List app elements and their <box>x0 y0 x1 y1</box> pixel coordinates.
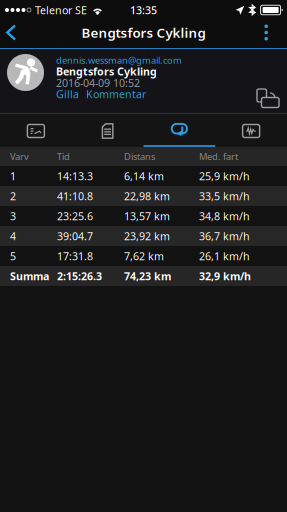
staticText: Kommentar <box>86 87 146 101</box>
staticText: 74,23 km <box>124 269 171 283</box>
staticText: 23:25.6 <box>57 209 93 223</box>
button[interactable]: Laps <box>143 114 215 147</box>
button[interactable]: Screen mirroring <box>257 89 281 110</box>
staticText: 32,9 km/h <box>199 269 251 283</box>
staticText: Bengtsfors Cykling <box>81 24 205 41</box>
staticText: Telenor SE <box>35 3 87 17</box>
staticText: 14:13.3 <box>57 169 93 183</box>
staticText: Gilla <box>56 87 79 101</box>
staticText: Med. fart <box>199 150 238 163</box>
staticText: 26,1 km/h <box>199 249 250 263</box>
staticText: 25,9 km/h <box>199 169 250 183</box>
staticText: Bengtsfors Cykling <box>56 64 157 79</box>
staticText: 2 <box>10 189 16 203</box>
staticText: 3 <box>10 209 16 223</box>
staticText: 4 <box>10 229 16 243</box>
staticText: 36,7 km/h <box>199 229 250 243</box>
button[interactable]: Heart rate <box>215 114 287 147</box>
staticText: 23,92 km <box>124 229 170 243</box>
staticText: 2:15:26.3 <box>57 269 102 283</box>
staticText: 39:04.7 <box>57 229 93 243</box>
staticText: 13,57 km <box>124 209 170 223</box>
button[interactable]: Map <box>0 114 72 147</box>
staticText: 1 <box>10 169 16 183</box>
button[interactable]: Summary <box>72 114 144 147</box>
button[interactable]: Back <box>0 18 28 47</box>
staticText: Tid <box>57 150 70 163</box>
staticText: 41:10.8 <box>57 189 93 203</box>
staticText: 5 <box>10 249 16 263</box>
button[interactable]: Gilla <box>56 87 79 101</box>
button[interactable]: More options <box>250 18 287 46</box>
staticText: 7,62 km <box>124 249 164 263</box>
staticText: 22,98 km <box>124 189 170 203</box>
staticText: 17:31.8 <box>57 249 93 263</box>
staticText: 33,5 km/h <box>199 189 250 203</box>
staticText: Varv <box>10 150 29 163</box>
staticText: Summa <box>10 269 49 283</box>
staticText: 13:35 <box>130 3 157 17</box>
staticText: dennis.wessman@gmail.com <box>56 54 182 66</box>
staticText: Distans <box>124 150 155 163</box>
staticText: 34,8 km/h <box>199 209 250 223</box>
staticText: 2016-04-09 10:52 <box>56 76 140 90</box>
staticText: 6,14 km <box>124 169 164 183</box>
button[interactable]: Kommentar <box>86 87 146 101</box>
